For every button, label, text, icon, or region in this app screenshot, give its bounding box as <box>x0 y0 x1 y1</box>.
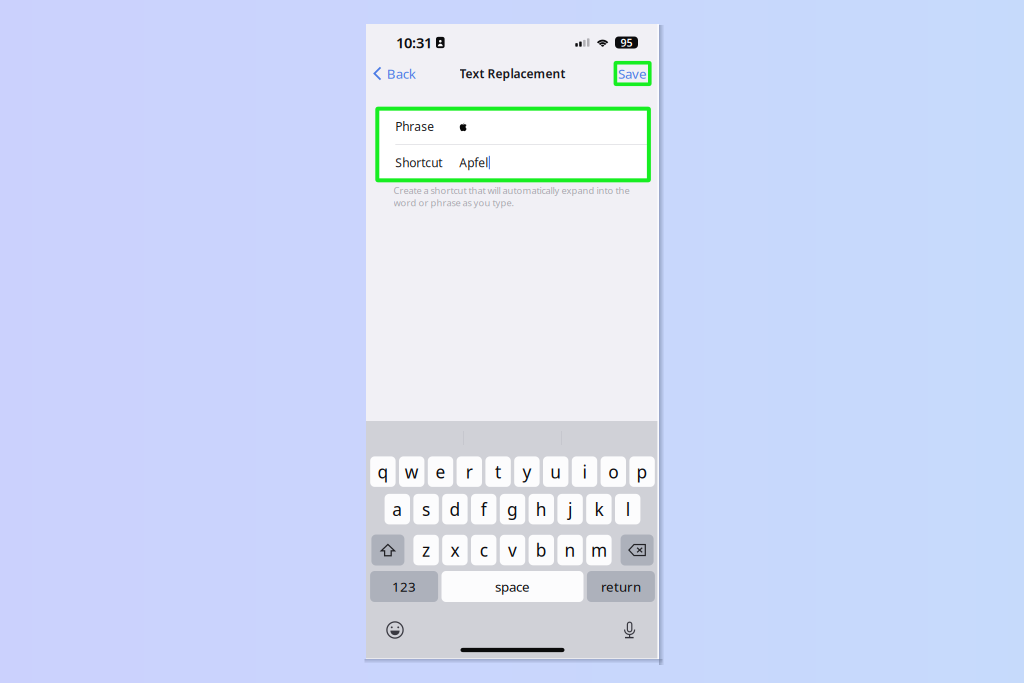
staticText: g <box>507 498 518 521</box>
staticText: z <box>422 538 430 561</box>
button[interactable]: Back <box>366 60 424 86</box>
button[interactable]: z <box>413 535 439 565</box>
staticText: q <box>377 460 388 483</box>
staticText: l <box>626 498 630 521</box>
staticText: Create a shortcut that will automaticall… <box>393 184 629 209</box>
staticText: y <box>522 460 531 483</box>
staticText: f <box>481 498 487 521</box>
staticText: n <box>565 538 576 561</box>
staticText: w <box>405 460 419 483</box>
button[interactable]: n <box>557 535 583 565</box>
button[interactable]: b <box>529 535 554 565</box>
staticText: Shortcut <box>395 155 442 170</box>
staticText: c <box>480 538 488 561</box>
button[interactable]: u <box>543 456 568 487</box>
button[interactable]: Emoji <box>381 617 409 643</box>
staticText: a <box>392 498 402 521</box>
button[interactable]: s <box>413 494 439 524</box>
staticText: b <box>536 538 547 561</box>
button[interactable]: d <box>442 494 468 524</box>
button[interactable]: space <box>441 571 583 602</box>
button[interactable]: p <box>629 456 655 487</box>
staticText: Back <box>387 65 416 82</box>
staticText: v <box>508 538 517 561</box>
button[interactable]: m <box>586 535 612 565</box>
staticText: r <box>466 460 473 483</box>
button[interactable]: h <box>529 494 554 524</box>
staticText: s <box>422 498 430 521</box>
button[interactable]: r <box>457 456 482 487</box>
button[interactable]: 123 <box>370 571 438 602</box>
button[interactable]: x <box>442 535 468 565</box>
button[interactable]: k <box>586 494 612 524</box>
button[interactable]: g <box>500 494 525 524</box>
button[interactable]: f <box>471 494 496 524</box>
staticText: d <box>449 498 460 521</box>
staticText: u <box>550 460 561 483</box>
staticText: 10:31 <box>396 33 432 52</box>
staticText: 95 <box>620 35 632 50</box>
button[interactable]: v <box>500 535 525 565</box>
staticText: h <box>536 498 547 521</box>
button[interactable]: return <box>587 571 655 602</box>
staticText: o <box>608 460 618 483</box>
button[interactable]: Phrase <box>377 109 649 144</box>
button[interactable]: t <box>485 456 511 487</box>
button[interactable]: i <box>572 456 597 487</box>
staticText: m <box>591 538 607 561</box>
button[interactable]: e <box>428 456 453 487</box>
button[interactable]: Shortcut <box>377 145 649 180</box>
staticText: t <box>495 460 501 483</box>
button[interactable]: Delete <box>621 534 654 565</box>
staticText: x <box>450 538 459 561</box>
button[interactable]: l <box>615 494 640 524</box>
staticText: space <box>495 578 530 595</box>
staticText: 123 <box>392 578 416 595</box>
staticText: Text Replacement <box>459 65 565 81</box>
button[interactable]: o <box>601 456 626 487</box>
button[interactable]: y <box>514 456 540 487</box>
button[interactable]: Save <box>615 63 650 84</box>
button[interactable]: a <box>385 494 410 524</box>
button[interactable]: Shift <box>371 534 404 565</box>
staticText: k <box>594 498 603 521</box>
staticText: p <box>637 460 648 483</box>
button[interactable]: j <box>557 494 583 524</box>
button[interactable]: Dictate <box>616 617 644 643</box>
staticText: return <box>601 578 641 595</box>
staticText: i <box>582 460 586 483</box>
staticText: Save <box>618 65 647 82</box>
staticText: e <box>435 460 445 483</box>
button[interactable]: c <box>471 535 496 565</box>
button[interactable]: w <box>399 456 424 487</box>
staticText: Phrase <box>395 118 434 134</box>
staticText: j <box>568 498 572 521</box>
button[interactable]: q <box>370 456 396 487</box>
staticText: Apfel <box>459 155 488 170</box>
